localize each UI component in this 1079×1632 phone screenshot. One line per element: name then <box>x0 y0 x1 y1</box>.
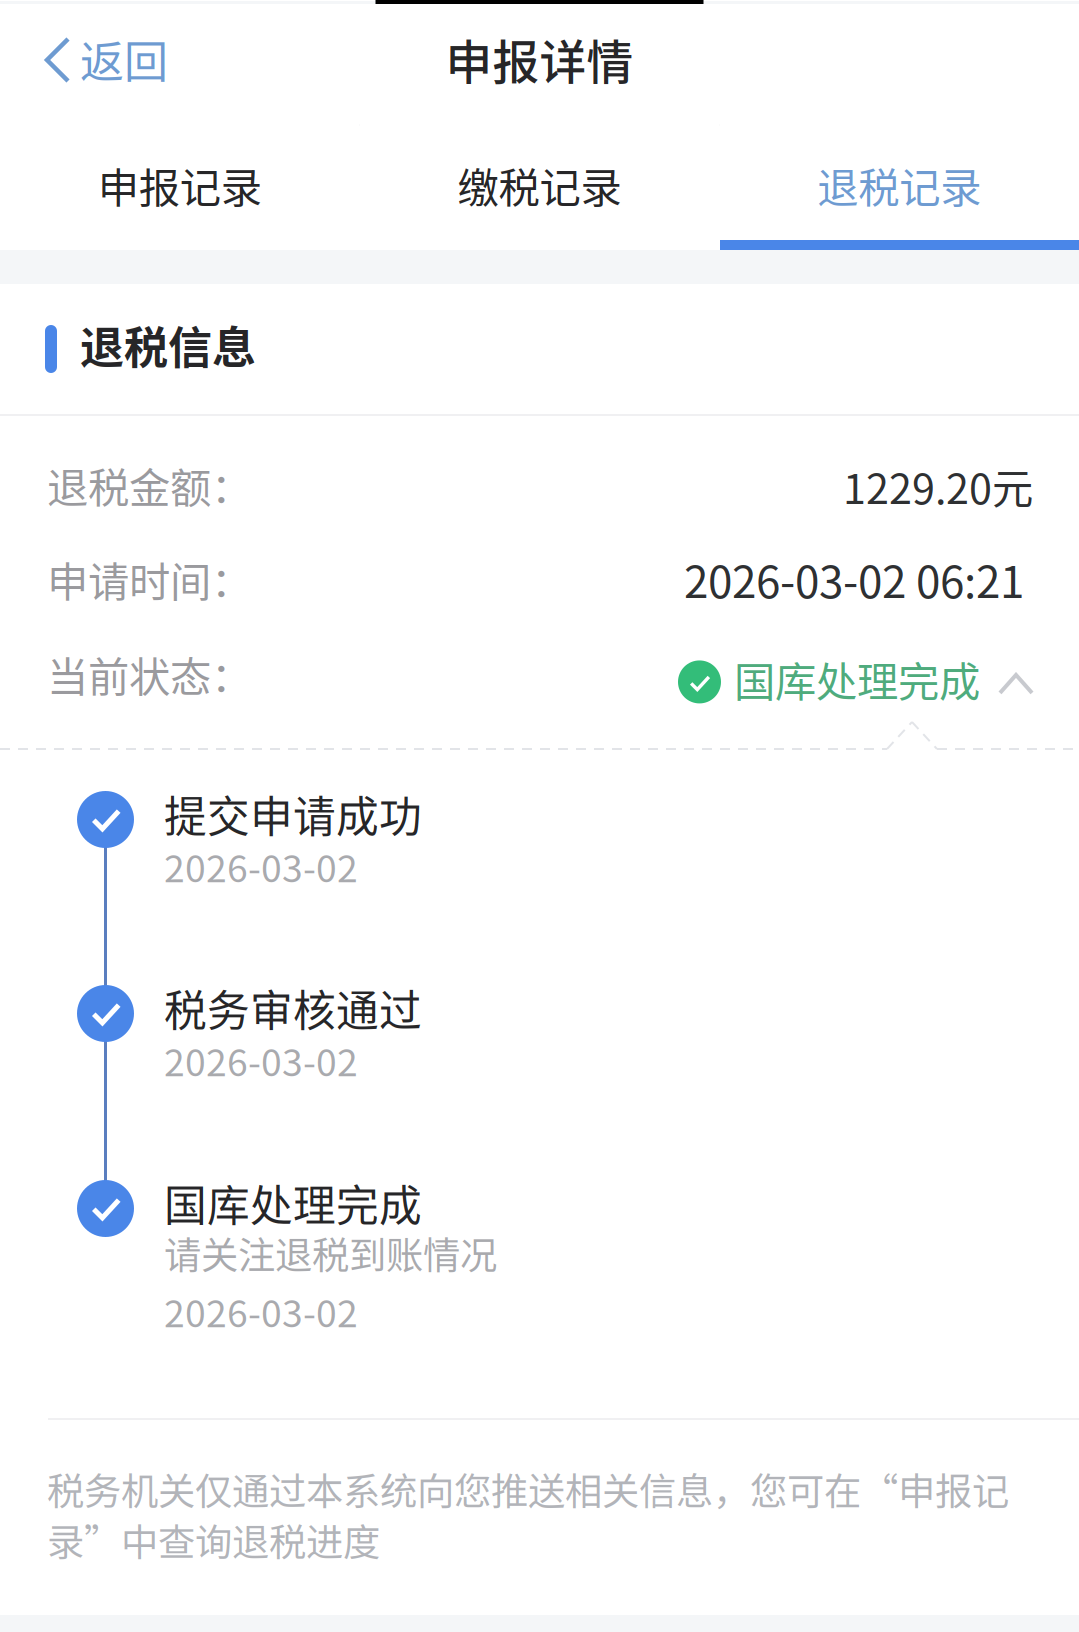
button[interactable]: 国库处理完成 <box>678 626 1034 738</box>
staticText: 退税金额： <box>47 455 252 515</box>
staticText: 2026-03-02 <box>164 1284 358 1338</box>
button[interactable]: 缴税记录 <box>360 123 719 247</box>
staticText: 提交申请成功 <box>164 783 422 845</box>
staticText: 国库处理完成 <box>164 1172 422 1234</box>
staticText: 录”中查询退税进度 <box>47 1513 380 1567</box>
staticText: 返回 <box>80 27 168 91</box>
staticText: 2026-03-02 <box>164 839 358 893</box>
staticText: 申报记录 <box>98 155 262 215</box>
staticText: 税务审核通过 <box>164 977 422 1039</box>
staticText: 缴税记录 <box>457 155 621 215</box>
button[interactable]: 返回 <box>0 6 194 122</box>
staticText: 1229.20元 <box>843 456 1033 516</box>
staticText: 请关注退税到账情况 <box>164 1226 497 1280</box>
staticText: 退税记录 <box>817 155 981 215</box>
staticText: 税务机关仅通过本系统向您推送相关信息，您可在“申报记 <box>47 1462 1009 1516</box>
button[interactable]: 退税记录 <box>719 123 1079 247</box>
button[interactable]: 申报记录 <box>0 123 360 247</box>
staticText: 退税信息 <box>80 313 256 377</box>
staticText: 申报详情 <box>445 25 633 93</box>
staticText: 2026-03-02 <box>164 1033 358 1087</box>
staticText: 国库处理完成 <box>734 649 980 709</box>
staticText: 2026-03-02 06:21 <box>684 547 1024 611</box>
staticText: 当前状态： <box>47 644 252 704</box>
staticText: 申请时间： <box>47 549 252 609</box>
